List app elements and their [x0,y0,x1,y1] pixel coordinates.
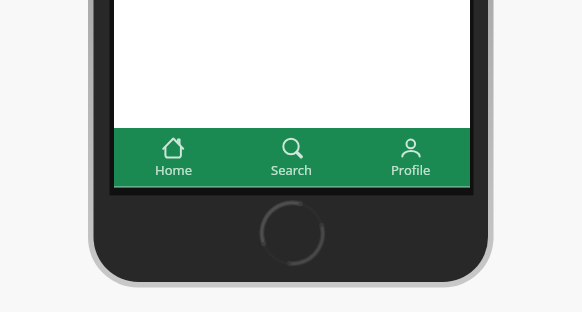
button[interactable]: Home [114,128,232,187]
staticText: Profile [391,161,431,179]
button[interactable]: Profile [351,128,470,187]
staticText: Home [155,161,192,179]
button[interactable]: Search [232,128,351,187]
staticText: Search [271,161,313,179]
